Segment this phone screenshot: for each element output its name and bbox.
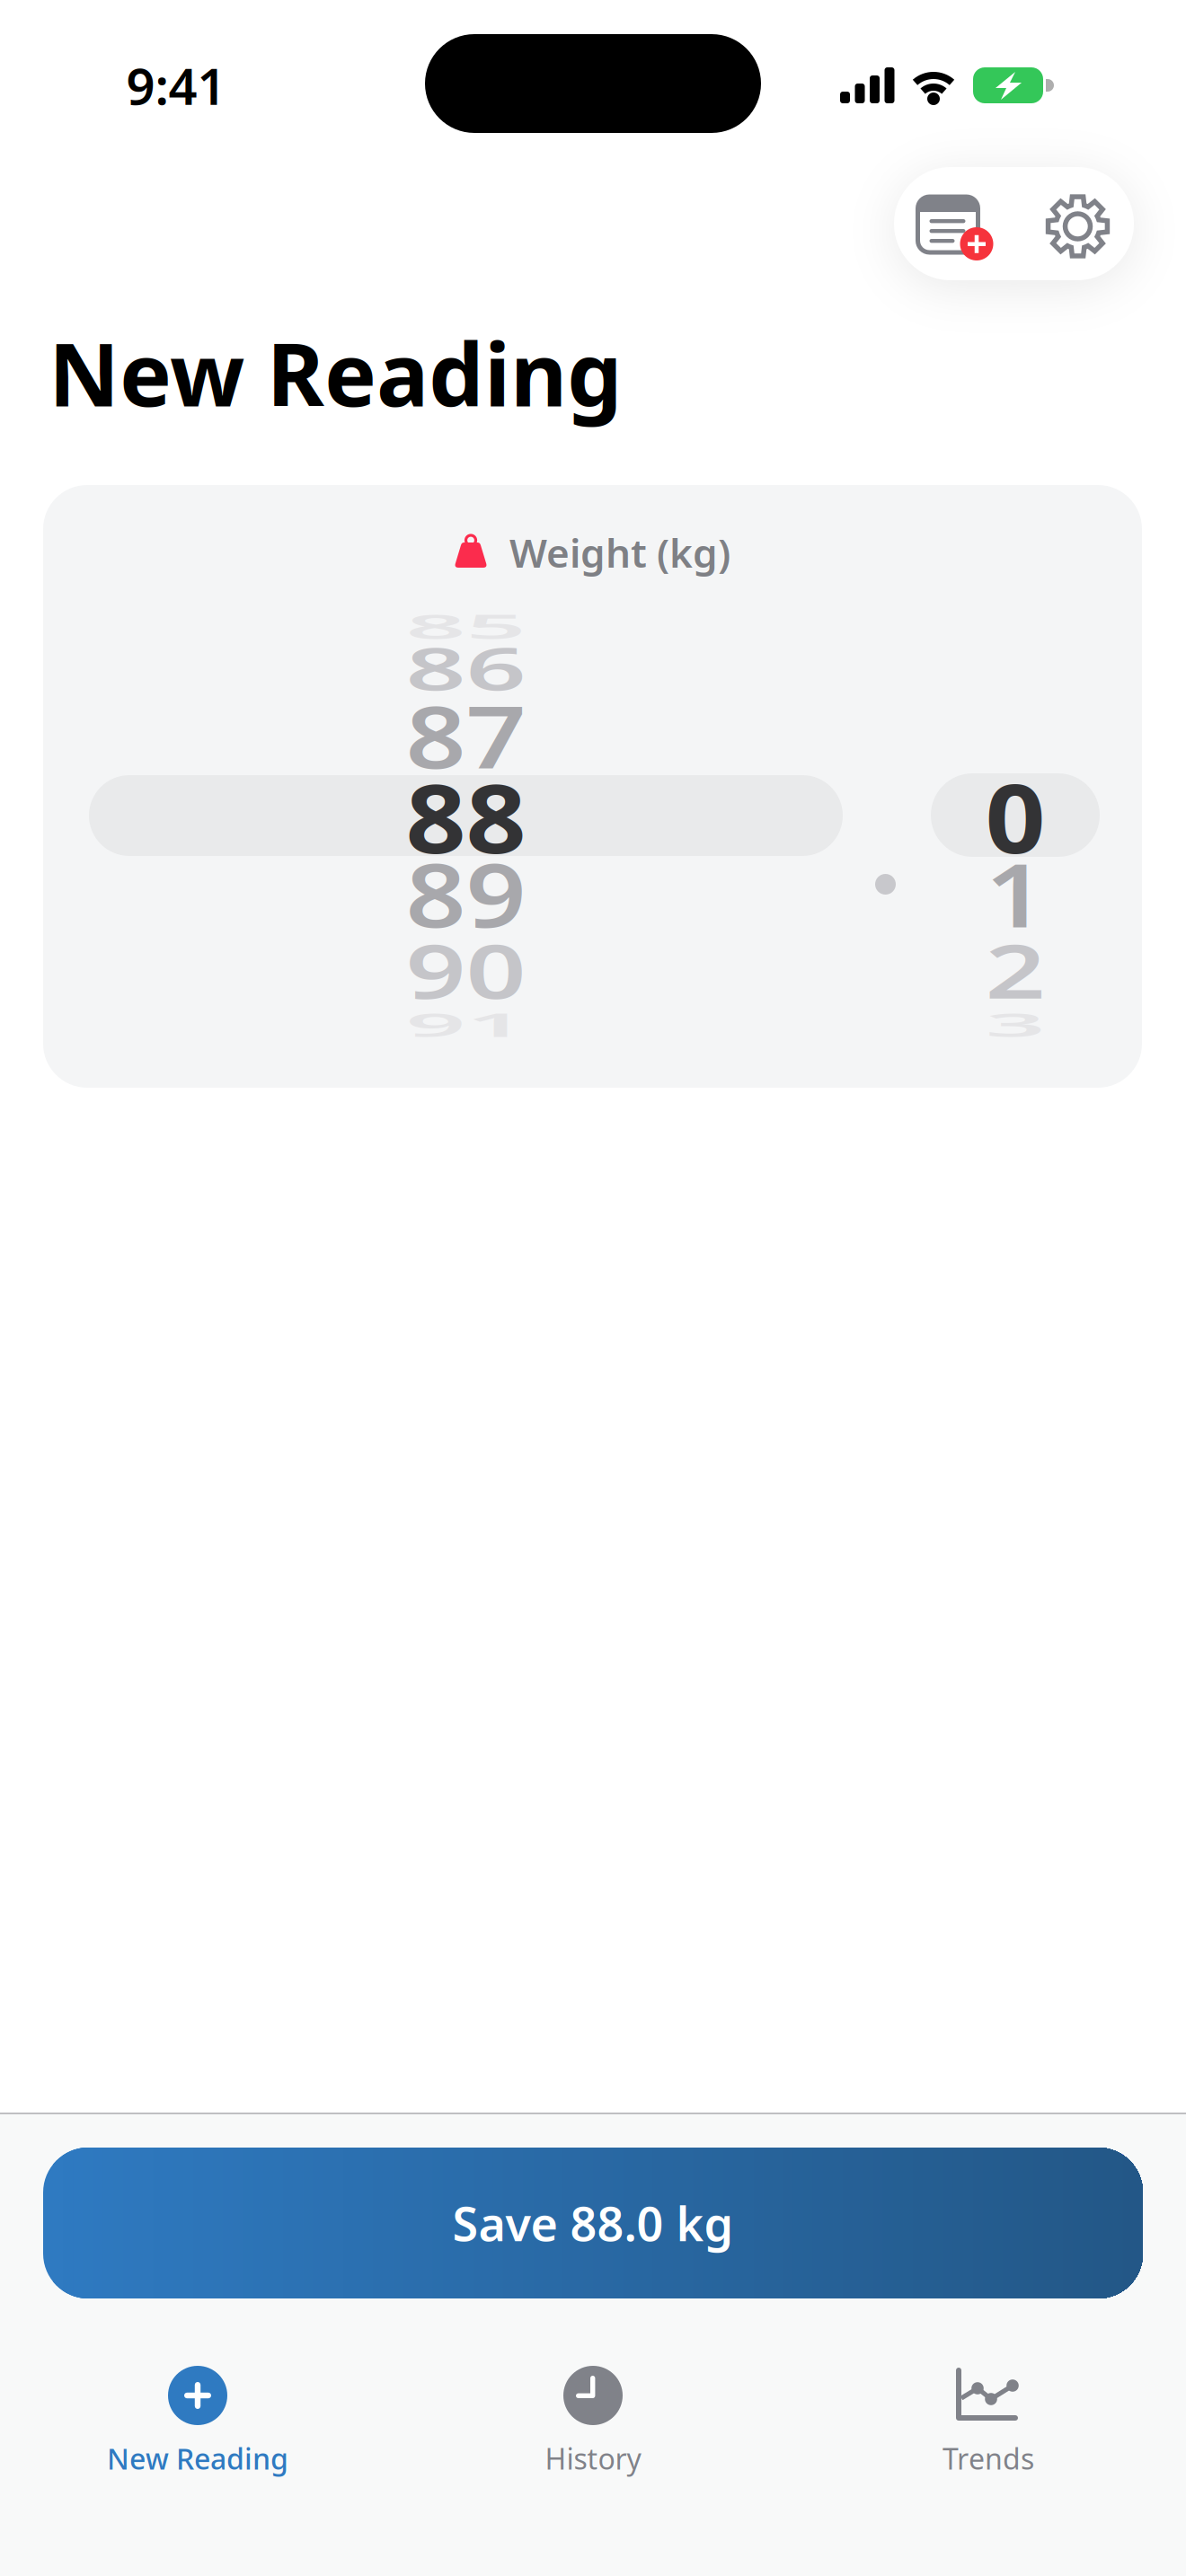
button[interactable]: Trends [791,2362,1186,2524]
staticText: 0 [985,746,1045,886]
staticText: 87 [406,665,526,805]
staticText: Weight (kg) [509,526,730,579]
staticText: 2 [985,900,1045,1040]
staticText: 85 [406,556,526,696]
staticText: 90 [406,900,526,1040]
staticText: 9:41 [126,52,226,119]
button[interactable]: New Reading [0,2362,395,2524]
button[interactable]: Save 88.0 kg [43,2148,1143,2298]
staticText: 86 [406,598,526,738]
staticText: 1 [985,823,1045,963]
staticText: Trends [943,2439,1034,2477]
staticText: History [545,2439,641,2477]
staticText: 3 [985,954,1045,1094]
button[interactable]: Settings [1014,167,1134,280]
button[interactable]: Add note [894,167,1014,280]
button[interactable]: History [395,2362,791,2524]
staticText: New Reading [107,2439,288,2477]
staticText: 88 [406,746,526,886]
staticText: 89 [406,823,526,963]
staticText: Save 88.0 kg [452,2192,734,2254]
staticText: 91 [406,954,526,1094]
staticText: New Reading [49,314,623,431]
